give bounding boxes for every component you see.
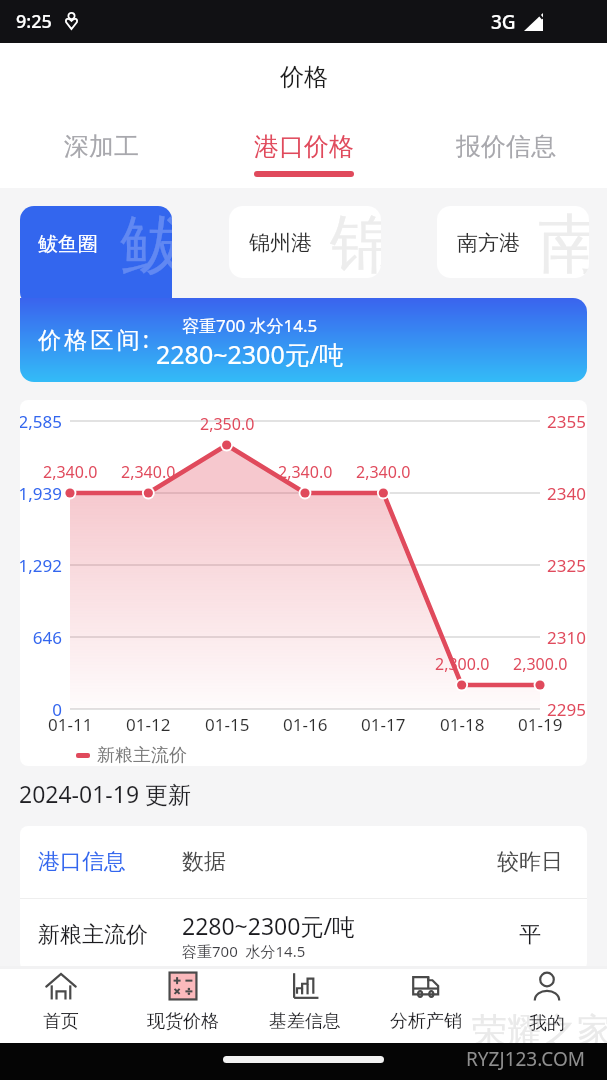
staticText: 较昨日 xyxy=(497,848,563,876)
staticText: 2,300.0 xyxy=(513,653,568,675)
staticText: 01-17 xyxy=(361,713,406,736)
staticText: 2340 xyxy=(547,482,586,505)
staticText: 646 xyxy=(20,626,62,649)
staticText: 首页 xyxy=(43,1010,79,1033)
staticText: 新粮主流价 xyxy=(38,921,182,949)
staticText: 2,340.0 xyxy=(121,461,176,483)
staticText: 9:25 xyxy=(16,9,52,34)
staticText: 01-11 xyxy=(48,713,93,736)
staticText: 数据 xyxy=(182,848,472,876)
staticText: 2,340.0 xyxy=(278,461,333,483)
staticText: 鲅鱼圈 xyxy=(38,232,98,257)
staticText: 2295 xyxy=(547,698,586,721)
button[interactable]: 首页 xyxy=(0,969,122,1033)
staticText: 容重700 水分14.5 xyxy=(182,314,318,337)
staticText: 南方港 xyxy=(457,230,520,256)
staticText: 2,585 xyxy=(20,410,62,433)
button[interactable]: 鲅 xyxy=(20,206,172,306)
staticText: 现货价格 xyxy=(147,1010,219,1033)
staticText: 1,939 xyxy=(20,482,62,505)
staticText: 我的 xyxy=(529,1012,565,1035)
staticText: 2280~2300元/吨 xyxy=(182,910,355,941)
staticText: 深加工 xyxy=(64,131,139,162)
staticText: 基差信息 xyxy=(269,1010,341,1033)
staticText: 01-18 xyxy=(440,713,485,736)
staticText: 锦州港 xyxy=(249,230,312,256)
button[interactable]: 锦 xyxy=(229,206,381,278)
staticText: 锦 xyxy=(330,206,381,276)
staticText: 容重700 水分14.5 xyxy=(182,941,306,961)
button[interactable]: 南 xyxy=(437,206,589,278)
staticText: 2,340.0 xyxy=(43,461,98,483)
staticText: 2,340.0 xyxy=(356,461,411,483)
button[interactable]: 分析产销 xyxy=(365,969,486,1033)
button[interactable]: 基差信息 xyxy=(244,969,365,1033)
staticText: 1,292 xyxy=(20,554,62,577)
staticText: 2280~2300元/吨 xyxy=(156,337,345,371)
staticText: 01-12 xyxy=(126,713,171,736)
staticText: 01-19 xyxy=(518,713,563,736)
button[interactable]: 报价信息 xyxy=(405,131,607,177)
staticText: 平 xyxy=(519,921,541,949)
staticText: 港口信息 xyxy=(38,848,182,876)
staticText: 价格 xyxy=(280,62,328,92)
staticText: 2310 xyxy=(547,626,586,649)
staticText: 2325 xyxy=(547,554,586,577)
staticText: 01-16 xyxy=(283,713,328,736)
button[interactable]: 港口价格 xyxy=(203,131,405,177)
staticText: RYZJ123.COM xyxy=(466,1046,586,1072)
staticText: 价格区间: xyxy=(38,323,153,354)
staticText: 南 xyxy=(538,206,589,276)
staticText: 新粮主流价 xyxy=(97,744,187,766)
button[interactable]: 我的 xyxy=(486,969,607,1035)
staticText: 2,350.0 xyxy=(200,413,255,435)
staticText: 分析产销 xyxy=(390,1010,462,1033)
button[interactable]: 深加工 xyxy=(0,131,203,177)
staticText: 荣耀之家 xyxy=(472,1009,607,1053)
staticText: 2355 xyxy=(547,410,586,433)
staticText: 港口价格 xyxy=(254,131,354,162)
staticText: 01-15 xyxy=(205,713,250,736)
staticText: 3G xyxy=(491,9,516,35)
button[interactable]: 现货价格 xyxy=(122,969,244,1033)
staticText: 鲅 xyxy=(120,206,172,287)
staticText: 2,300.0 xyxy=(435,653,490,675)
staticText: 0 xyxy=(20,698,62,721)
staticText: 报价信息 xyxy=(456,131,556,162)
staticText: 2024-01-19 更新 xyxy=(19,778,192,809)
